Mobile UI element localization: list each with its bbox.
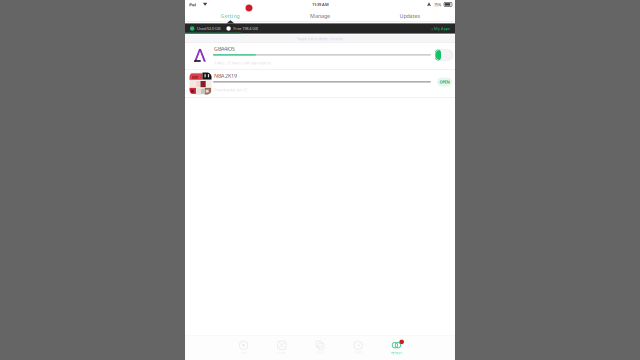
- staticText: Free 198.4 GB: [233, 26, 258, 31]
- staticText: Getting: [220, 12, 239, 20]
- staticText: Updates: [399, 12, 420, 20]
- button[interactable]: Manage: [275, 10, 365, 22]
- staticText: GBA4iOS: [214, 45, 235, 52]
- staticText: 11:39 AM: [312, 2, 329, 7]
- staticText: NBA 2K19: [214, 72, 237, 79]
- button[interactable]: GBA4iOS: [185, 42, 455, 69]
- staticText: News: [241, 351, 247, 354]
- button[interactable]: Updates: [365, 10, 455, 22]
- button[interactable]: My Apps: [377, 335, 415, 360]
- staticText: Swipe left to delete records: [297, 36, 343, 41]
- staticText: Downloaded Jan 12: [214, 87, 247, 92]
- button[interactable]: + My Apps: [431, 26, 450, 31]
- button[interactable]: NBA 2K19: [185, 69, 455, 96]
- staticText: Used 52.0 GB: [197, 26, 221, 31]
- staticText: 75%: [434, 2, 441, 7]
- staticText: 3 days, 21 hours until app expires: [214, 60, 271, 65]
- staticText: Manage: [310, 12, 330, 20]
- staticText: iPad: [188, 2, 196, 7]
- staticText: OPEN: [439, 79, 449, 85]
- button[interactable]: Getting: [185, 10, 275, 22]
- staticText: My Apps: [391, 351, 402, 354]
- staticText: + My Apps: [431, 26, 450, 31]
